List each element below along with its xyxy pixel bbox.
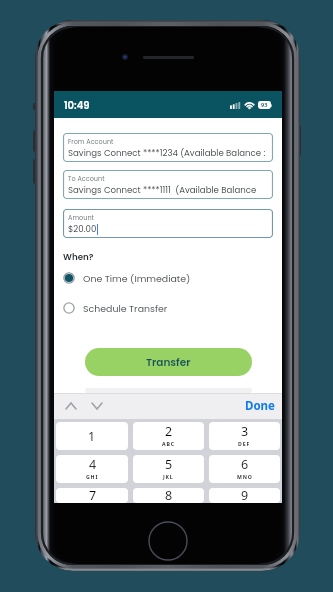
button[interactable]: Transfer bbox=[85, 348, 252, 376]
staticText: DEF bbox=[238, 440, 251, 447]
staticText: Savings Connect ****1111 (Available Bala… bbox=[68, 184, 257, 196]
staticText: Schedule Transfer bbox=[83, 302, 168, 315]
staticText: 9 bbox=[241, 488, 249, 502]
staticText: From Account bbox=[68, 137, 114, 146]
button[interactable]: 1 bbox=[56, 422, 128, 450]
button[interactable]: Previous field bbox=[62, 397, 80, 415]
button[interactable]: Schedule Transfer bbox=[63, 299, 273, 317]
button[interactable]: From Account bbox=[63, 133, 273, 162]
button[interactable]: 8 bbox=[133, 488, 204, 503]
staticText: Amount bbox=[68, 213, 94, 222]
staticText: 10:49 bbox=[64, 98, 90, 112]
staticText: To Account bbox=[68, 174, 105, 183]
staticText: $20.00 bbox=[68, 223, 97, 235]
button[interactable]: One Time (Immediate) bbox=[63, 269, 273, 287]
button[interactable]: 3 bbox=[209, 422, 280, 450]
staticText: 93 bbox=[261, 101, 268, 109]
staticText: Done bbox=[245, 398, 275, 414]
staticText: 5 bbox=[165, 456, 173, 473]
button[interactable]: 6 bbox=[209, 455, 280, 483]
staticText: JKL bbox=[163, 473, 174, 480]
button[interactable]: 7 bbox=[56, 488, 128, 503]
staticText: Transfer bbox=[146, 355, 191, 370]
button[interactable]: 2 bbox=[133, 422, 204, 450]
staticText: 1 bbox=[88, 428, 96, 445]
staticText: GHI bbox=[86, 473, 99, 480]
staticText: 8 bbox=[165, 488, 173, 502]
staticText: Savings Connect ****1234 (Available Bala… bbox=[68, 147, 266, 159]
staticText: 7 bbox=[89, 488, 97, 502]
button[interactable]: Next field bbox=[88, 397, 106, 415]
button[interactable]: 5 bbox=[133, 455, 204, 483]
staticText: 2 bbox=[165, 423, 173, 440]
staticText: One Time (Immediate) bbox=[83, 272, 191, 285]
staticText: When? bbox=[63, 251, 94, 263]
button[interactable]: To Account bbox=[63, 170, 273, 199]
button[interactable]: Done bbox=[238, 394, 282, 418]
staticText: 4 bbox=[89, 456, 97, 473]
staticText: MNO bbox=[237, 473, 253, 480]
staticText: 3 bbox=[241, 423, 249, 440]
button[interactable]: 4 bbox=[56, 455, 128, 483]
staticText: 6 bbox=[241, 456, 249, 473]
staticText: ABC bbox=[162, 440, 175, 447]
button[interactable]: 9 bbox=[209, 488, 280, 503]
button[interactable]: Amount bbox=[63, 209, 273, 238]
